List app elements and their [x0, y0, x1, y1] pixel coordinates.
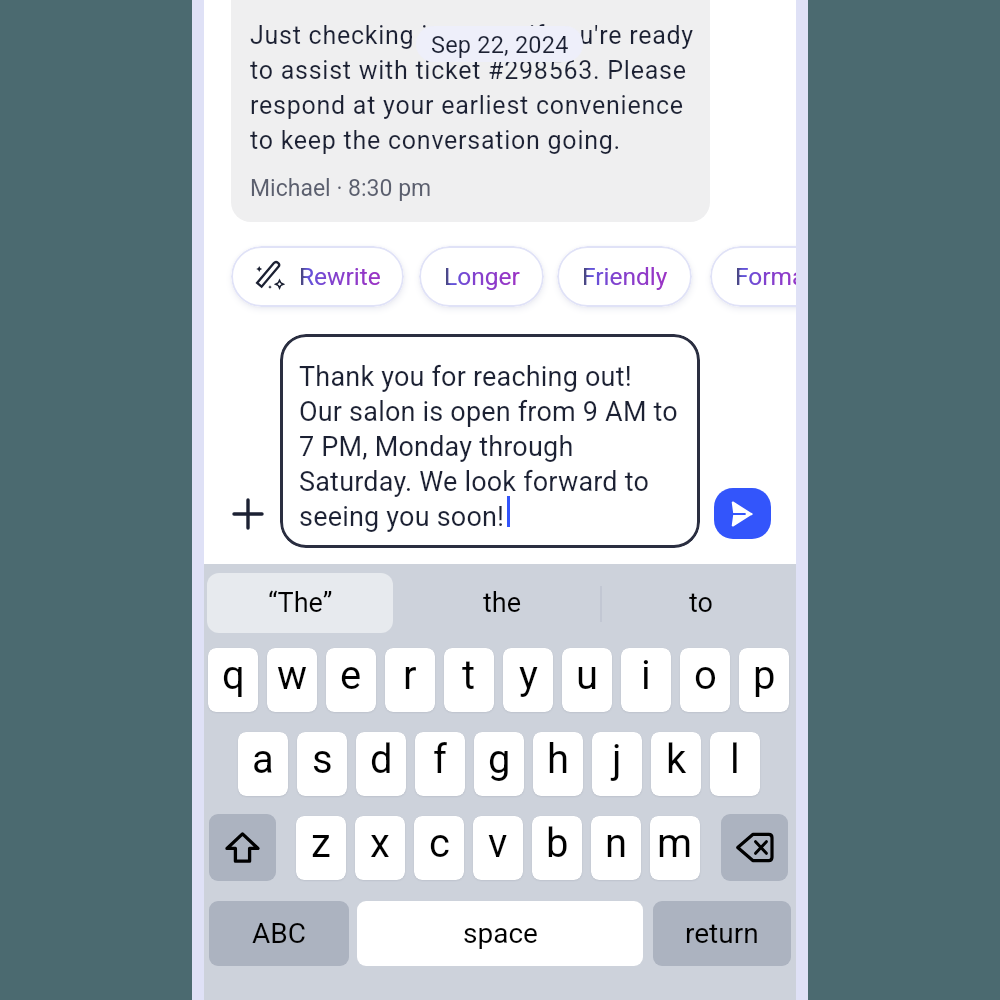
button[interactable]: Shift	[209, 814, 276, 881]
staticText: Michael · 8:30 pm	[250, 175, 432, 202]
button[interactable]: Formal	[710, 246, 796, 307]
staticText: c	[429, 820, 450, 867]
button[interactable]: Longer	[419, 246, 544, 307]
staticText: j	[612, 736, 622, 783]
button[interactable]: k	[651, 732, 701, 796]
button[interactable]: h	[533, 732, 583, 796]
staticText: p	[753, 652, 776, 699]
staticText: Longer	[444, 262, 520, 291]
button[interactable]: q	[208, 648, 258, 712]
staticText: return	[685, 917, 759, 950]
button[interactable]: s	[297, 732, 347, 796]
button[interactable]: x	[355, 816, 405, 880]
staticText: w	[277, 652, 308, 699]
button[interactable]: return	[653, 901, 791, 966]
button[interactable]: b	[532, 816, 582, 880]
staticText: Thank you for reaching out! Our salon is…	[299, 361, 678, 532]
button[interactable]: e	[326, 648, 376, 712]
staticText: “The”	[268, 587, 333, 619]
button[interactable]: Just checking in to see if you're ready …	[231, 0, 710, 222]
staticText: Formal	[735, 262, 796, 291]
staticText: d	[370, 736, 393, 783]
staticText: z	[311, 820, 331, 867]
staticText: n	[605, 820, 628, 867]
staticText: m	[657, 820, 693, 867]
staticText: o	[694, 652, 717, 699]
button[interactable]: j	[592, 732, 642, 796]
staticText: Sep 22, 2024	[431, 31, 569, 59]
button[interactable]: a	[238, 732, 288, 796]
staticText: u	[576, 652, 599, 699]
staticText: the	[483, 587, 522, 619]
button[interactable]: Add attachment	[223, 489, 273, 539]
staticText: h	[547, 736, 570, 783]
staticText: t	[462, 652, 476, 699]
staticText: y	[519, 652, 538, 699]
button[interactable]: y	[503, 648, 553, 712]
button[interactable]: v	[473, 816, 523, 880]
button[interactable]: to	[608, 573, 794, 633]
button[interactable]: u	[562, 648, 612, 712]
button[interactable]: l	[710, 732, 760, 796]
button[interactable]: Friendly	[557, 246, 692, 307]
staticText: space	[463, 917, 538, 950]
button[interactable]: Thank you for reaching out! Our salon is…	[280, 334, 700, 548]
staticText: s	[312, 736, 333, 783]
staticText: e	[340, 652, 362, 699]
button[interactable]: g	[474, 732, 524, 796]
button[interactable]: w	[267, 648, 317, 712]
staticText: Rewrite	[299, 262, 381, 291]
button[interactable]: z	[296, 816, 346, 880]
staticText: b	[546, 820, 569, 867]
staticText: i	[641, 652, 651, 699]
button[interactable]: n	[591, 816, 641, 880]
button[interactable]: m	[650, 816, 700, 880]
button[interactable]: d	[356, 732, 406, 796]
staticText: g	[488, 736, 511, 783]
staticText: q	[222, 652, 245, 699]
staticText: k	[666, 736, 687, 783]
staticText: a	[252, 736, 274, 783]
button[interactable]: i	[621, 648, 671, 712]
button[interactable]: t	[444, 648, 494, 712]
staticText: Just checking in to see if you're ready …	[250, 21, 705, 155]
button[interactable]: c	[414, 816, 464, 880]
button[interactable]: the	[409, 573, 595, 633]
staticText: r	[403, 652, 417, 699]
button[interactable]: Send message	[714, 488, 771, 539]
staticText: l	[730, 736, 740, 783]
staticText: Friendly	[582, 262, 668, 291]
staticText: v	[488, 820, 508, 867]
button[interactable]: p	[739, 648, 789, 712]
staticText: f	[433, 736, 447, 783]
button[interactable]: Rewrite	[231, 246, 404, 307]
button[interactable]: “The”	[207, 573, 393, 633]
button[interactable]: ABC	[209, 901, 349, 966]
staticText: x	[370, 820, 390, 867]
button[interactable]: space	[357, 901, 643, 966]
staticText: to	[689, 587, 713, 619]
button[interactable]: f	[415, 732, 465, 796]
staticText: ABC	[252, 917, 306, 950]
button[interactable]: r	[385, 648, 435, 712]
button[interactable]: Backspace	[721, 814, 788, 881]
button[interactable]: o	[680, 648, 730, 712]
